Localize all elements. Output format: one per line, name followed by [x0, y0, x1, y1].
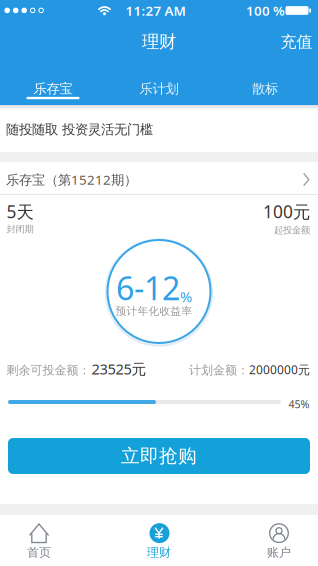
- staticText: 账户: [267, 545, 291, 560]
- staticText: %: [180, 287, 192, 306]
- staticText: 6-12: [116, 267, 180, 309]
- staticText: 100元: [263, 200, 310, 223]
- staticText: 理财: [147, 545, 171, 560]
- staticText: 随投随取 投资灵活无门槛: [6, 121, 153, 138]
- staticText: 2000000元: [249, 362, 310, 377]
- staticText: 首页: [27, 545, 51, 560]
- staticText: 散标: [252, 80, 278, 97]
- staticText: 理财: [142, 31, 176, 52]
- button[interactable]: 充值: [280, 32, 312, 52]
- staticText: 充值: [280, 32, 312, 52]
- staticText: 起投金额: [274, 224, 310, 236]
- button[interactable]: 账户: [248, 515, 310, 566]
- staticText: 立即抢购: [121, 444, 197, 467]
- staticText: 乐存宝: [33, 80, 72, 97]
- staticText: 100 %: [246, 2, 285, 19]
- staticText: 计划金额：: [189, 363, 249, 377]
- button[interactable]: 首页: [8, 515, 70, 566]
- button[interactable]: 乐存宝（第15212期）: [0, 162, 318, 194]
- button[interactable]: 理财: [128, 515, 190, 566]
- button[interactable]: 乐计划: [106, 62, 212, 105]
- staticText: 剩余可投金额：: [6, 363, 90, 377]
- button[interactable]: 乐存宝: [0, 62, 106, 105]
- staticText: 乐计划: [139, 80, 178, 97]
- staticText: 5天: [6, 200, 33, 223]
- staticText: 23525元: [91, 359, 146, 378]
- staticText: 预计年化收益率: [115, 305, 192, 318]
- staticText: 乐存宝（第15212期）: [6, 171, 137, 188]
- staticText: 封闭期: [6, 223, 33, 235]
- button[interactable]: 立即抢购: [8, 438, 310, 474]
- staticText: 45%: [288, 397, 309, 411]
- staticText: 11:27 AM: [125, 2, 185, 19]
- button[interactable]: 散标: [212, 62, 318, 105]
